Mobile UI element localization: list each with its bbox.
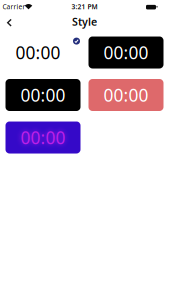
staticText: 00:00 bbox=[103, 83, 148, 106]
staticText: 00:00 bbox=[103, 41, 148, 64]
staticText: 00:00 bbox=[20, 126, 65, 149]
staticText: 00:00 bbox=[20, 83, 65, 106]
staticText: 3:21 PM bbox=[71, 2, 97, 11]
button[interactable]: Neon clock style bbox=[5, 121, 80, 153]
button[interactable]: Black clock style bbox=[88, 36, 163, 68]
staticText: Carrier bbox=[2, 2, 25, 11]
button[interactable]: White clock style, selected bbox=[5, 36, 80, 68]
button[interactable]: Red clock style bbox=[88, 79, 163, 111]
staticText: 00:00 bbox=[15, 41, 60, 64]
button[interactable]: Black clock style bbox=[5, 79, 80, 111]
button[interactable]: Back bbox=[0, 13, 18, 30]
staticText: Style bbox=[72, 14, 97, 29]
